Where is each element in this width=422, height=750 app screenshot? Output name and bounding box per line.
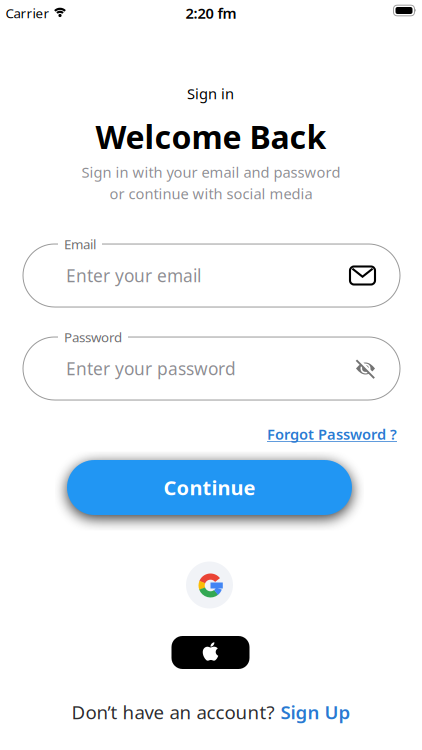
staticText: or continue with social media [109, 184, 312, 203]
button[interactable]: Sign in with Google [186, 561, 233, 608]
staticText: Enter your password [66, 357, 236, 380]
button[interactable]: Email [23, 243, 400, 307]
staticText: Carrier [5, 4, 49, 22]
staticText: Don’t have an account? [71, 700, 274, 724]
staticText: Forgot Password ? [267, 424, 397, 444]
staticText: Password [64, 328, 122, 346]
staticText: Sign Up [280, 700, 350, 724]
button[interactable]: Forgot Password ? [267, 424, 397, 444]
staticText: Welcome Back [95, 115, 326, 158]
staticText: Sign in with your email and password [81, 162, 340, 182]
button[interactable]: Continue [67, 460, 352, 515]
staticText: Enter your email [66, 264, 201, 287]
staticText: Sign in [187, 84, 234, 103]
staticText: 2:20 fm [185, 3, 236, 23]
button[interactable]: Sign in with Apple [171, 636, 249, 669]
button[interactable]: Password [23, 336, 400, 400]
staticText: Email [64, 235, 96, 253]
button[interactable]: Sign Up [280, 700, 350, 724]
staticText: Continue [163, 474, 255, 501]
